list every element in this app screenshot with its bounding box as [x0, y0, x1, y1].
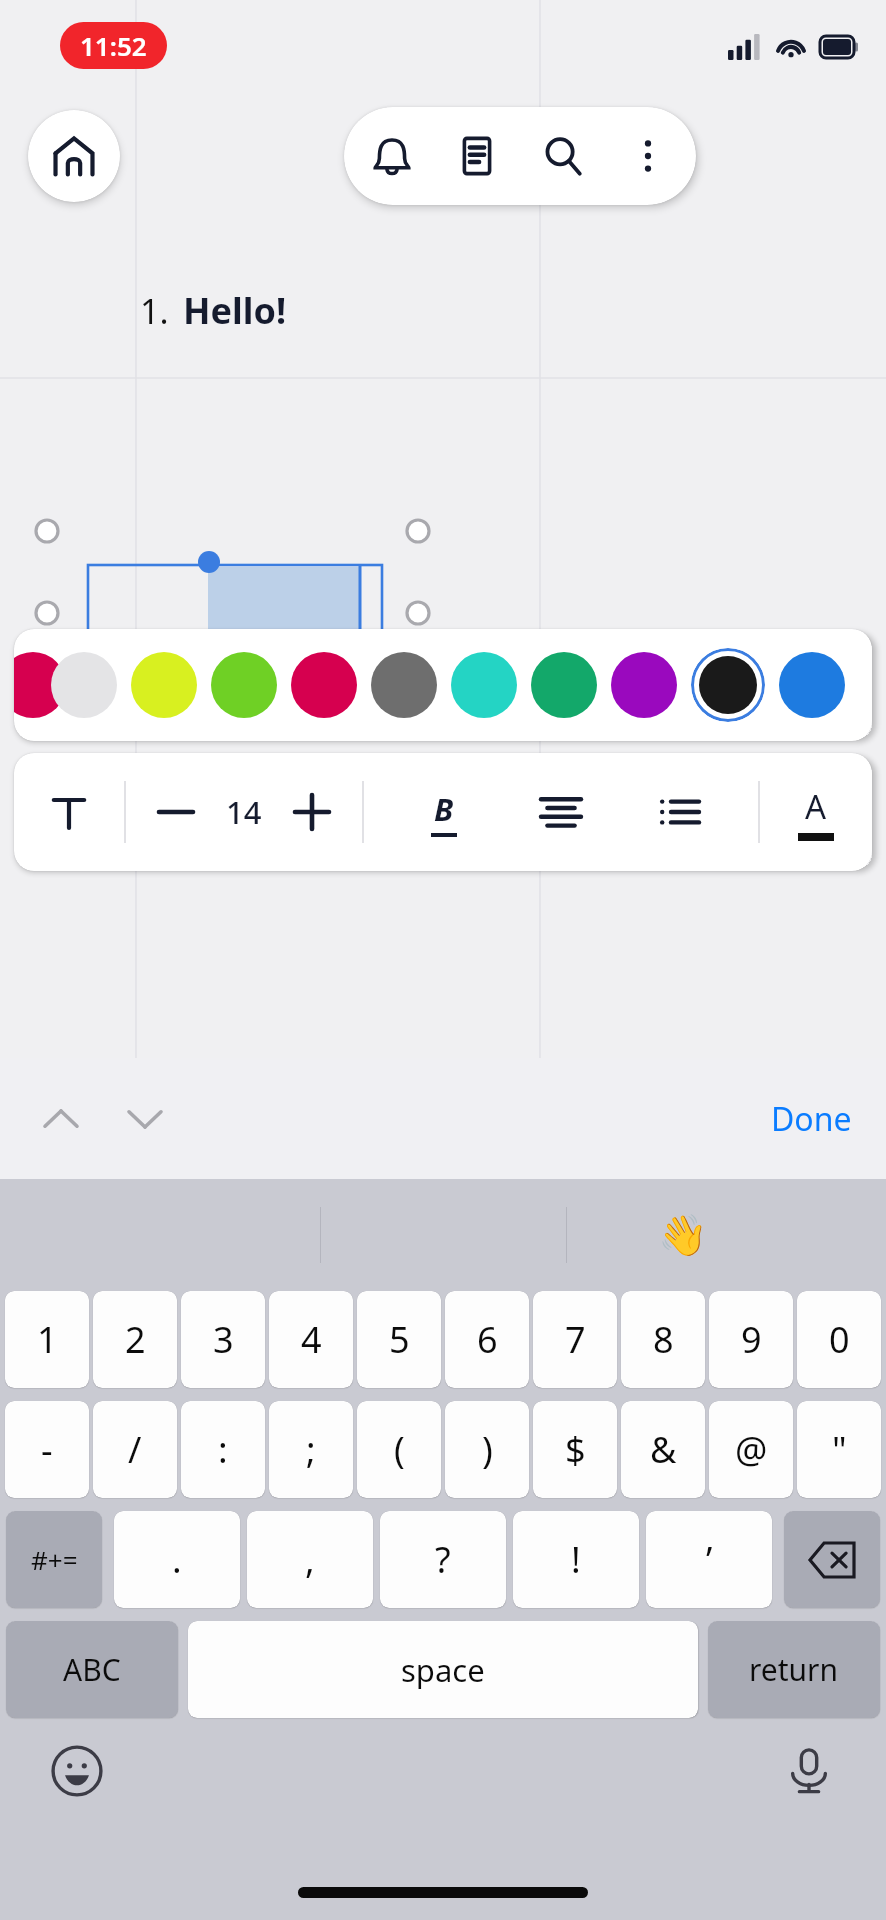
button[interactable]: ) — [445, 1401, 529, 1498]
button[interactable]: Colour — [14, 652, 66, 718]
button[interactable]: return — [708, 1621, 880, 1718]
staticText: B — [434, 788, 454, 830]
button[interactable]: ( — [357, 1401, 441, 1498]
button[interactable]: Text colour — [760, 753, 872, 871]
staticText: A — [805, 784, 827, 829]
button[interactable]: Colour — [611, 652, 677, 718]
button[interactable]: Done — [759, 1087, 864, 1151]
button[interactable]: Colour — [779, 652, 845, 718]
staticText: . — [172, 1535, 182, 1584]
button[interactable]: Decrease size — [143, 779, 209, 845]
staticText: 14 — [226, 791, 262, 833]
button[interactable]: Colour — [451, 652, 517, 718]
staticText: $ — [565, 1425, 586, 1474]
button[interactable]: Emoji — [42, 1736, 112, 1806]
button[interactable]: 6 — [445, 1291, 529, 1388]
button[interactable]: Search — [525, 118, 601, 194]
staticText: 0 — [829, 1315, 850, 1364]
button[interactable]: space — [188, 1621, 698, 1718]
button[interactable]: Colour — [131, 652, 197, 718]
staticText: 11:52 — [80, 28, 147, 63]
button[interactable]: Notifications — [354, 118, 430, 194]
button[interactable]: Home — [28, 110, 120, 202]
staticText: ; — [306, 1425, 316, 1474]
button[interactable]: 0 — [797, 1291, 881, 1388]
button[interactable]: 👋 — [648, 1202, 718, 1269]
button[interactable]: Dictation — [774, 1736, 844, 1806]
staticText: & — [650, 1425, 677, 1474]
staticText: 6 — [477, 1315, 498, 1364]
button[interactable]: 2 — [93, 1291, 177, 1388]
button[interactable]: Increase size — [279, 779, 345, 845]
button[interactable]: Next — [110, 1084, 180, 1154]
button[interactable]: ABC — [6, 1621, 178, 1718]
staticText: " — [832, 1425, 847, 1474]
button[interactable]: Colour black selected — [691, 648, 765, 722]
button[interactable]: ; — [269, 1401, 353, 1498]
button[interactable]: 7 — [533, 1291, 617, 1388]
button[interactable]: 9 — [709, 1291, 793, 1388]
button[interactable]: @ — [709, 1401, 793, 1498]
staticText: 4 — [301, 1315, 322, 1364]
button[interactable]: $ — [533, 1401, 617, 1498]
staticText: #+= — [31, 1542, 78, 1577]
staticText: 7 — [565, 1315, 586, 1364]
button[interactable]: More options — [610, 118, 686, 194]
staticText: 1. — [140, 288, 169, 334]
staticText: 3 — [213, 1315, 234, 1364]
button[interactable]: / — [93, 1401, 177, 1498]
button[interactable]: Bulleted list — [641, 774, 717, 850]
staticText: Hello — [183, 286, 276, 335]
button[interactable]: : — [181, 1401, 265, 1498]
button[interactable]: , — [247, 1511, 373, 1608]
button[interactable]: Text style — [14, 753, 124, 871]
staticText: ! — [276, 286, 287, 335]
button[interactable]: 8 — [621, 1291, 705, 1388]
button[interactable]: ’ — [646, 1511, 772, 1608]
staticText: Done — [771, 1097, 852, 1141]
button[interactable]: Colour — [51, 652, 117, 718]
staticText: 8 — [653, 1315, 674, 1364]
button[interactable]: & — [621, 1401, 705, 1498]
staticText: 👋 — [658, 1212, 708, 1259]
button[interactable]: - — [5, 1401, 89, 1498]
staticText: ! — [571, 1535, 581, 1584]
button[interactable]: Previous — [26, 1084, 96, 1154]
button[interactable]: Bold — [406, 774, 482, 850]
button[interactable]: . — [114, 1511, 240, 1608]
button[interactable]: ! — [513, 1511, 639, 1608]
staticText: 9 — [741, 1315, 762, 1364]
staticText: 5 — [389, 1315, 410, 1364]
staticText: ) — [482, 1425, 493, 1474]
staticText: @ — [735, 1425, 768, 1474]
staticText: : — [218, 1425, 228, 1474]
staticText: / — [128, 1425, 142, 1474]
button[interactable]: " — [797, 1401, 881, 1498]
button[interactable]: 4 — [269, 1291, 353, 1388]
button[interactable]: Align — [523, 774, 599, 850]
staticText: ( — [394, 1425, 405, 1474]
staticText: space — [401, 1649, 485, 1691]
button[interactable]: Colour — [371, 652, 437, 718]
button[interactable]: Backspace — [784, 1511, 880, 1608]
button[interactable]: Document — [439, 118, 515, 194]
staticText: ? — [435, 1535, 451, 1584]
staticText: ABC — [63, 1649, 121, 1690]
staticText: ’ — [706, 1535, 713, 1584]
button[interactable]: 5 — [357, 1291, 441, 1388]
staticText: 1 — [37, 1315, 58, 1364]
staticText: 2 — [125, 1315, 146, 1364]
button[interactable]: 1 — [5, 1291, 89, 1388]
button[interactable]: Colour — [531, 652, 597, 718]
button[interactable]: ? — [380, 1511, 506, 1608]
staticText: return — [749, 1649, 839, 1690]
staticText: - — [41, 1425, 53, 1474]
button[interactable]: #+= — [6, 1511, 102, 1608]
staticText: , — [305, 1535, 315, 1584]
button[interactable]: Colour — [211, 652, 277, 718]
button[interactable]: Colour — [291, 652, 357, 718]
button[interactable]: 3 — [181, 1291, 265, 1388]
